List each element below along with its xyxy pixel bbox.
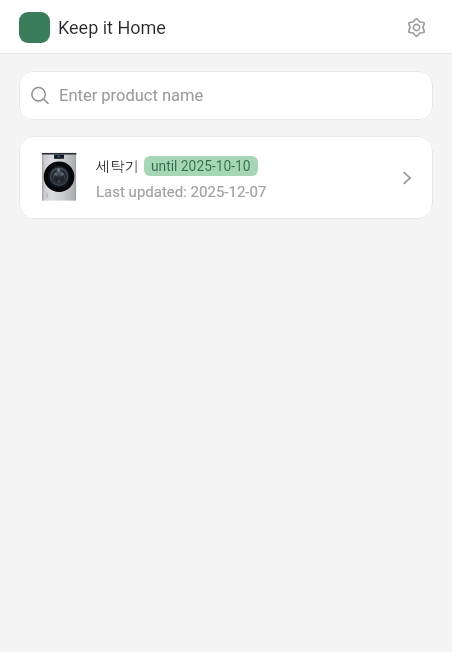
staticText: Last updated: 2025-12-07 bbox=[96, 183, 267, 201]
staticText: 세탁기 bbox=[96, 157, 139, 175]
staticText: Keep it Home bbox=[58, 17, 166, 38]
button[interactable]: Settings bbox=[398, 9, 434, 45]
staticText: until 2025-10-10 bbox=[151, 158, 251, 174]
button[interactable]: Enter product name bbox=[19, 71, 433, 120]
button[interactable]: 세탁기 bbox=[19, 136, 433, 219]
staticText: Enter product name bbox=[59, 86, 204, 105]
